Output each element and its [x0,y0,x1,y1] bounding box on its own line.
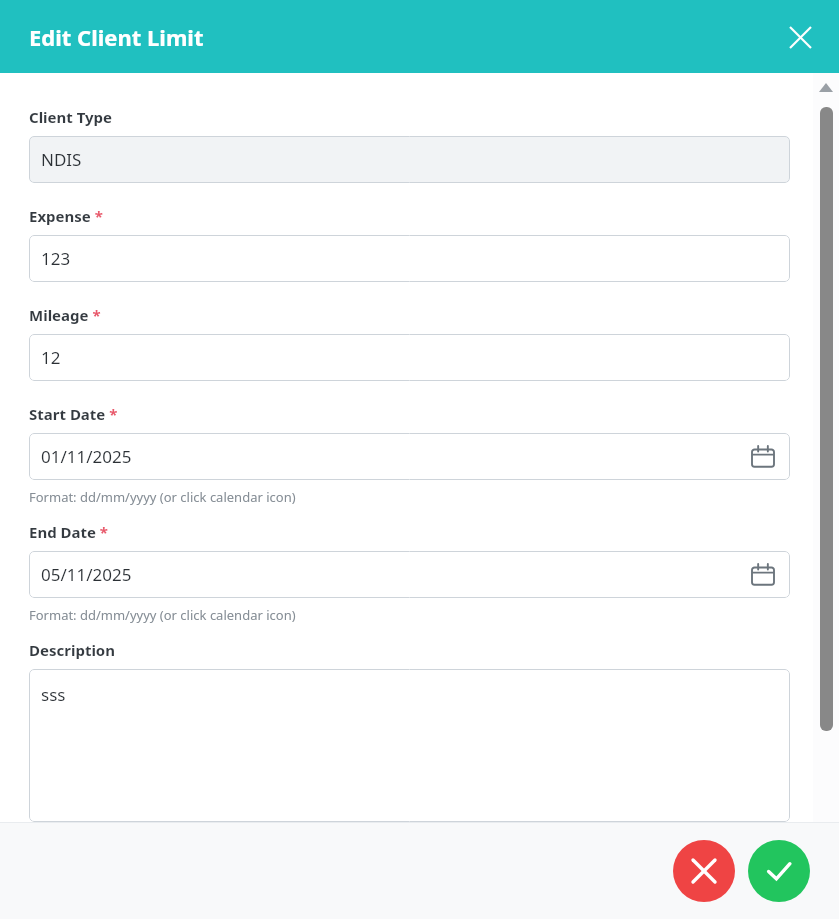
button[interactable]: Save [748,840,810,902]
staticText: NDIS [41,148,82,171]
button[interactable]: NDIS [29,136,790,183]
staticText: 05/11/2025 [41,563,132,586]
button[interactable]: 12 [29,334,790,381]
button[interactable]: 01/11/2025 [29,433,790,480]
staticText: 123 [41,247,71,270]
staticText: Format: dd/mm/yyyy (or click calendar ic… [29,606,296,624]
button[interactable]: Close [783,20,817,54]
button[interactable]: 05/11/2025 [29,551,790,598]
button[interactable]: 123 [29,235,790,282]
button[interactable]: Open calendar [752,564,774,586]
staticText: Client Type [29,107,113,127]
staticText: 01/11/2025 [41,445,132,468]
staticText: Description [29,640,115,660]
staticText: End Date * [29,522,108,542]
button[interactable]: sss [29,669,790,822]
staticText: Start Date * [29,404,118,424]
staticText: 12 [41,346,61,369]
staticText: sss [41,683,66,706]
button[interactable]: Open calendar [752,446,774,468]
staticText: Edit Client Limit [29,22,204,52]
button[interactable]: Cancel [673,840,735,902]
staticText: Mileage * [29,305,101,325]
staticText: Expense * [29,206,103,226]
staticText: Format: dd/mm/yyyy (or click calendar ic… [29,488,296,506]
